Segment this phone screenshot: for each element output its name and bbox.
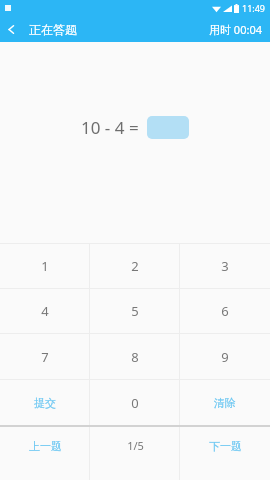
button[interactable]: 1 (0, 244, 90, 288)
button[interactable]: 上一题 (0, 427, 90, 480)
staticText: 正在答题 (29, 22, 77, 37)
staticText: 4 (41, 302, 49, 320)
button[interactable]: 0 (90, 380, 180, 425)
button[interactable]: 清除 (180, 380, 270, 425)
button[interactable]: 2 (90, 244, 180, 288)
button[interactable]: 5 (90, 289, 180, 333)
staticText: 上一题 (29, 439, 62, 453)
button[interactable]: 提交 (0, 380, 90, 425)
button[interactable]: 7 (0, 334, 90, 379)
staticText: 3 (221, 257, 229, 275)
staticText: 6 (221, 302, 229, 320)
staticText: 0 (131, 394, 139, 412)
staticText: 1 (41, 257, 49, 275)
button[interactable]: 6 (180, 289, 270, 333)
button[interactable]: 8 (90, 334, 180, 379)
button[interactable]: 4 (0, 289, 90, 333)
button[interactable] (147, 116, 189, 139)
staticText: 5 (131, 302, 139, 320)
staticText: 1/5 (127, 438, 144, 453)
button[interactable]: 下一题 (180, 427, 270, 480)
staticText: 清除 (214, 396, 236, 410)
staticText: 11:49 (242, 2, 266, 14)
staticText: 用时 00:04 (209, 22, 262, 37)
staticText: 7 (41, 348, 49, 366)
button[interactable]: 3 (180, 244, 270, 288)
staticText: 8 (131, 348, 139, 366)
button[interactable]: 9 (180, 334, 270, 379)
staticText: 下一题 (209, 439, 242, 453)
staticText: 10 - 4 = (81, 116, 139, 139)
staticText: 9 (221, 348, 229, 366)
staticText: 2 (131, 257, 139, 275)
staticText: 提交 (34, 396, 56, 410)
button[interactable]: Back (0, 20, 23, 39)
button[interactable]: 1/5 (90, 427, 180, 480)
